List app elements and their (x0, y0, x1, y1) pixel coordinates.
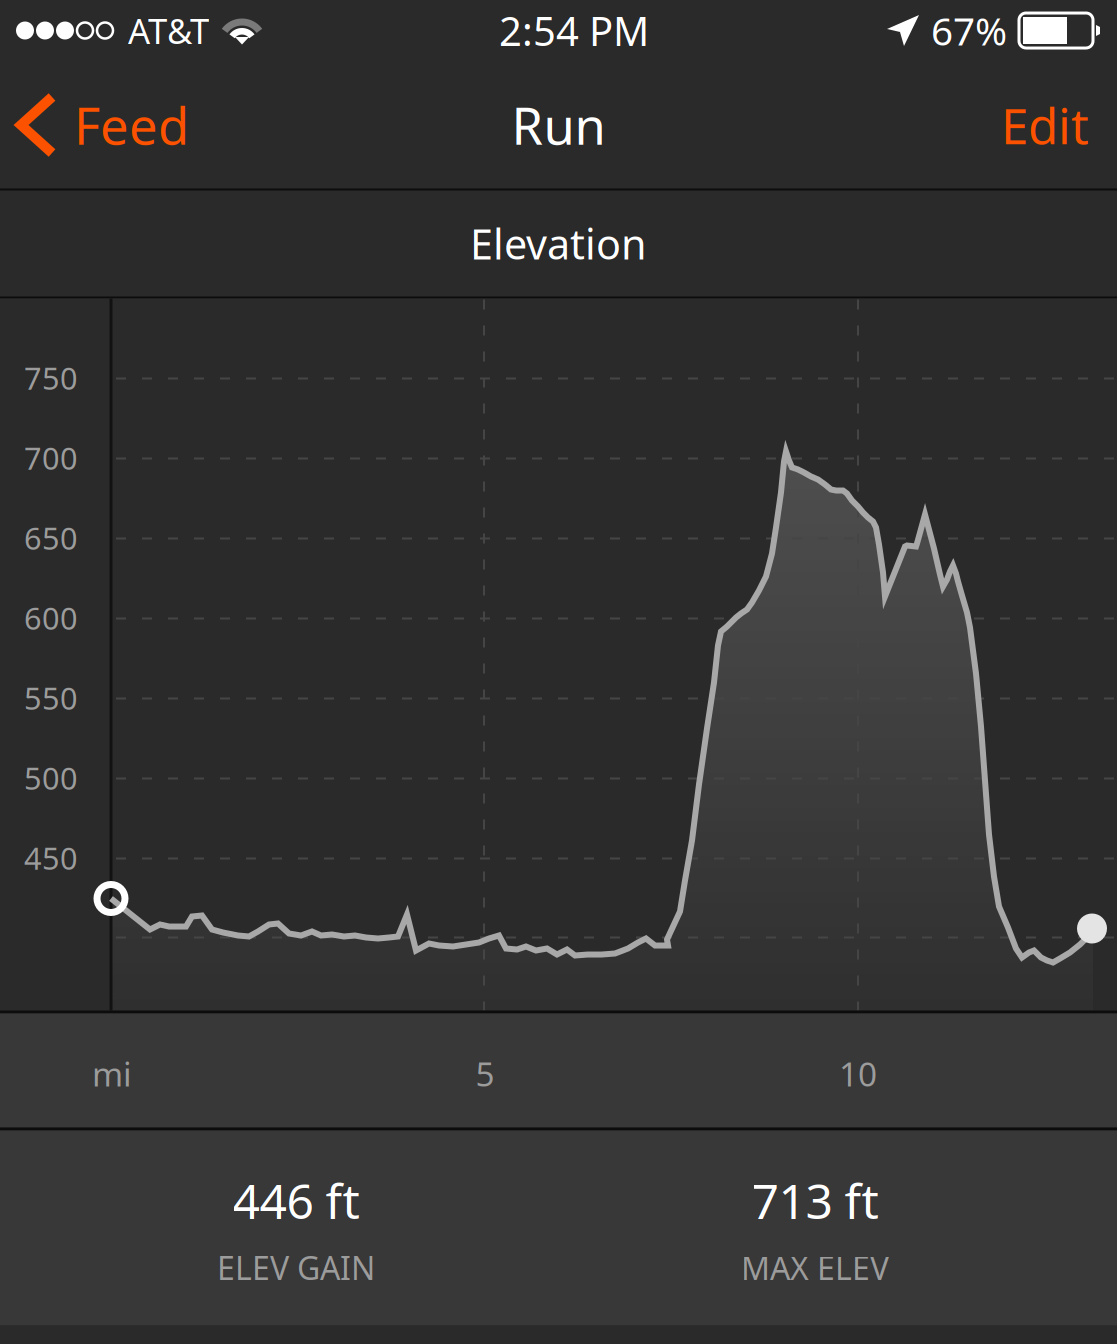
staticText: 750 (24, 357, 78, 398)
staticText: mi (92, 1051, 132, 1096)
staticText: MAX ELEV (741, 1246, 889, 1289)
staticText: 2:54 PM (499, 4, 649, 57)
staticText: Feed (74, 91, 189, 159)
staticText: 450 (24, 837, 78, 878)
staticText: 10 (839, 1051, 877, 1096)
staticText: 5 (475, 1051, 494, 1096)
staticText: 713 ft (751, 1168, 878, 1232)
staticText: 446 ft (232, 1168, 359, 1232)
staticText: 67% (931, 5, 1007, 56)
staticText: 700 (24, 437, 78, 478)
staticText: AT&T (128, 7, 209, 53)
staticText: ELEV GAIN (217, 1246, 375, 1289)
button[interactable]: Feed (0, 61, 213, 188)
staticText: Edit (1001, 92, 1089, 158)
staticText: Run (511, 91, 605, 159)
staticText: 500 (24, 757, 78, 798)
staticText: 550 (24, 677, 78, 718)
staticText: 600 (24, 597, 78, 638)
button[interactable]: Edit (973, 61, 1117, 188)
staticText: Elevation (470, 216, 647, 271)
staticText: 650 (24, 517, 78, 558)
